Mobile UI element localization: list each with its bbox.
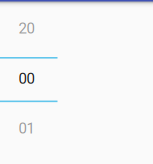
button[interactable]: 20 (0, 3, 55, 53)
staticText: 00 (19, 70, 35, 87)
button[interactable]: 00 (0, 54, 55, 104)
staticText: 20 (19, 19, 35, 37)
staticText: 01 (19, 119, 35, 137)
button[interactable]: 01 (0, 103, 55, 153)
